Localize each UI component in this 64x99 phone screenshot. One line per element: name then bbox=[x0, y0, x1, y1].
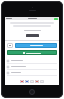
button[interactable] bbox=[15, 43, 57, 48]
button[interactable] bbox=[5, 58, 59, 63]
button[interactable]: Home bbox=[29, 89, 35, 95]
button[interactable] bbox=[7, 50, 57, 55]
button[interactable] bbox=[5, 64, 59, 69]
button[interactable]: Quantity bbox=[7, 43, 13, 48]
button[interactable] bbox=[5, 70, 59, 75]
